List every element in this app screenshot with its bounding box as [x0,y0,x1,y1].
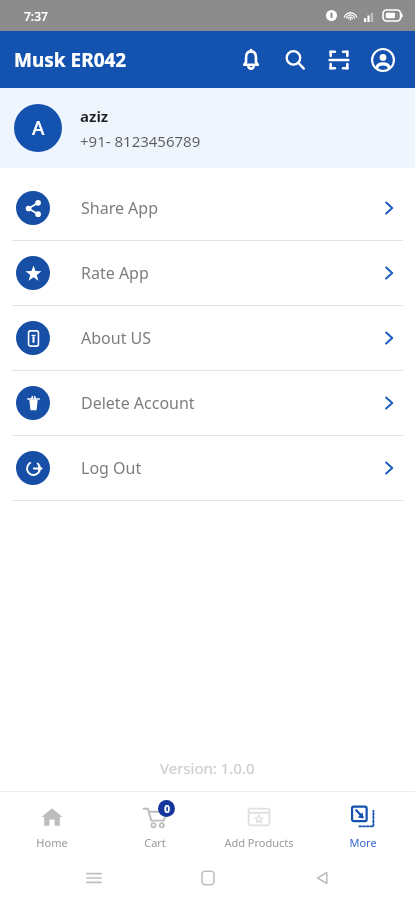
button[interactable]: Rate App [0,241,415,305]
staticText: aziz [80,106,109,126]
button[interactable]: Back [301,857,343,899]
button[interactable]: Log Out [0,436,415,500]
button[interactable]: Home [187,857,229,899]
button[interactable]: More [311,798,415,850]
staticText: About US [81,327,381,349]
staticText: Home [36,835,68,850]
staticText: Delete Account [81,392,381,414]
staticText: 0 [164,802,170,816]
button[interactable]: About US [0,306,415,370]
staticText: A [32,115,45,141]
button[interactable]: Share App [0,176,415,240]
staticText: Add Products [224,835,294,850]
staticText: Cart [144,835,166,850]
staticText: Rate App [81,262,381,284]
staticText: Share App [81,197,381,219]
button[interactable]: Scan barcode [317,38,361,82]
button[interactable]: Add Products [207,798,311,850]
staticText: Log Out [81,457,381,479]
button[interactable]: Search [273,38,317,82]
staticText: 7:37 [24,8,48,24]
staticText: More [349,835,377,850]
button[interactable]: 0 [103,798,207,850]
button[interactable]: Home [0,798,103,850]
staticText: +91- 8123456789 [80,131,201,151]
button[interactable]: Notifications [229,38,273,82]
button[interactable]: A [0,88,415,168]
staticText: Musk ER042 [14,47,127,73]
staticText: Version: 1.0.0 [160,758,255,778]
button[interactable]: Recent apps [73,857,115,899]
button[interactable]: Profile [361,38,405,82]
button[interactable]: Delete Account [0,371,415,435]
